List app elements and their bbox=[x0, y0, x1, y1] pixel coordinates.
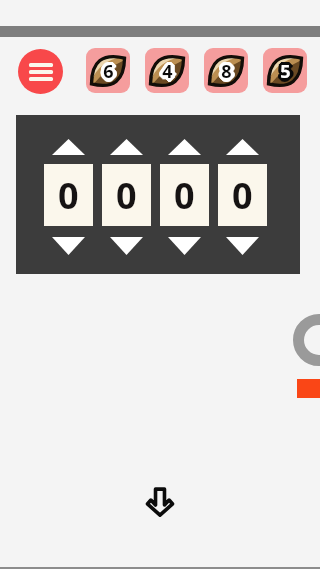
staticText: 4 bbox=[163, 62, 174, 87]
staticText: 6 bbox=[105, 58, 116, 83]
staticText: 8 bbox=[223, 60, 234, 85]
staticText: 6 bbox=[104, 57, 115, 82]
staticText: 8 bbox=[222, 60, 233, 85]
staticText: 6 bbox=[103, 57, 114, 82]
staticText: 8 bbox=[223, 57, 234, 82]
staticText: 6 bbox=[104, 56, 115, 81]
staticText: 6 bbox=[102, 62, 113, 87]
staticText: 0 bbox=[58, 171, 79, 220]
staticText: 6 bbox=[106, 60, 117, 85]
staticText: 8 bbox=[219, 61, 230, 86]
staticText: 6 bbox=[100, 58, 111, 83]
staticText: 0 bbox=[116, 171, 137, 220]
staticText: 6 bbox=[104, 61, 115, 86]
staticText: 8 bbox=[220, 61, 231, 86]
staticText: 5 bbox=[277, 58, 288, 83]
staticText: 8 bbox=[222, 58, 233, 83]
staticText: 8 bbox=[225, 59, 236, 84]
button[interactable]: Ball 5 bbox=[263, 48, 307, 93]
staticText: 0 bbox=[174, 171, 195, 220]
staticText: 8 bbox=[224, 58, 235, 83]
staticText: 4 bbox=[161, 60, 172, 85]
staticText: 4 bbox=[161, 58, 172, 83]
staticText: 8 bbox=[218, 60, 229, 85]
staticText: 4 bbox=[163, 61, 174, 86]
staticText: 4 bbox=[159, 59, 170, 84]
staticText: 6 bbox=[101, 59, 112, 84]
staticText: 5 bbox=[283, 58, 294, 83]
staticText: 8 bbox=[220, 58, 231, 83]
staticText: 5 bbox=[281, 57, 292, 82]
staticText: 5 bbox=[282, 59, 293, 84]
staticText: 5 bbox=[280, 57, 291, 82]
staticText: 5 bbox=[278, 58, 289, 83]
staticText: 6 bbox=[103, 63, 114, 88]
staticText: 8 bbox=[223, 61, 234, 86]
staticText: 4 bbox=[162, 57, 173, 82]
staticText: 4 bbox=[160, 57, 171, 82]
staticText: 4 bbox=[164, 59, 175, 84]
staticText: 4 bbox=[164, 61, 175, 86]
staticText: 8 bbox=[220, 57, 231, 82]
staticText: 6 bbox=[103, 59, 114, 84]
staticText: 6 bbox=[102, 57, 113, 82]
button[interactable]: Scroll down bbox=[143, 485, 177, 519]
staticText: 5 bbox=[281, 56, 292, 81]
staticText: 5 bbox=[280, 63, 291, 88]
staticText: 4 bbox=[161, 62, 172, 87]
staticText: 4 bbox=[163, 56, 174, 81]
staticText: 8 bbox=[221, 56, 232, 81]
staticText: 4 bbox=[162, 63, 173, 88]
staticText: 8 bbox=[223, 58, 234, 83]
staticText: 5 bbox=[282, 57, 293, 82]
staticText: 5 bbox=[283, 60, 294, 85]
staticText: 5 bbox=[281, 60, 292, 85]
staticText: 6 bbox=[101, 57, 112, 82]
staticText: 6 bbox=[102, 58, 113, 83]
button[interactable]: Menu bbox=[18, 49, 63, 94]
staticText: 5 bbox=[279, 57, 290, 82]
staticText: 4 bbox=[161, 57, 172, 82]
staticText: 5 bbox=[279, 60, 290, 85]
staticText: 8 bbox=[221, 63, 232, 88]
staticText: 6 bbox=[105, 60, 116, 85]
button[interactable]: Ball 8 bbox=[204, 48, 248, 93]
staticText: 8 bbox=[222, 56, 233, 81]
staticText: 5 bbox=[279, 56, 290, 81]
button[interactable]: Ball 6 bbox=[86, 48, 130, 93]
staticText: 4 bbox=[161, 56, 172, 81]
staticText: 6 bbox=[103, 61, 114, 86]
staticText: 8 bbox=[222, 57, 233, 82]
staticText: 8 bbox=[221, 59, 232, 84]
staticText: 4 bbox=[160, 59, 171, 84]
staticText: 8 bbox=[222, 61, 233, 86]
staticText: 5 bbox=[278, 57, 289, 82]
button[interactable]: Ball 4 bbox=[145, 48, 189, 93]
staticText: 5 bbox=[284, 59, 295, 84]
staticText: 5 bbox=[281, 61, 292, 86]
staticText: 5 bbox=[278, 59, 289, 84]
staticText: 4 bbox=[159, 60, 170, 85]
staticText: 4 bbox=[163, 58, 174, 83]
staticText: 4 bbox=[161, 61, 172, 86]
staticText: 4 bbox=[163, 60, 174, 85]
staticText: 8 bbox=[219, 58, 230, 83]
staticText: 8 bbox=[218, 58, 229, 83]
staticText: 4 bbox=[166, 59, 177, 84]
staticText: 4 bbox=[165, 60, 176, 85]
staticText: 0 bbox=[232, 171, 253, 220]
staticText: 6 bbox=[101, 60, 112, 85]
staticText: 4 bbox=[164, 58, 175, 83]
staticText: 6 bbox=[105, 57, 116, 82]
staticText: 6 bbox=[105, 61, 116, 86]
staticText: 4 bbox=[160, 58, 171, 83]
staticText: 6 bbox=[101, 61, 112, 86]
staticText: 5 bbox=[281, 62, 292, 87]
staticText: 5 bbox=[280, 59, 291, 84]
staticText: 5 bbox=[282, 58, 293, 83]
staticText: 6 bbox=[104, 62, 115, 87]
staticText: 8 bbox=[220, 56, 231, 81]
staticText: 6 bbox=[104, 58, 115, 83]
staticText: 5 bbox=[281, 58, 292, 83]
staticText: 4 bbox=[162, 59, 173, 84]
